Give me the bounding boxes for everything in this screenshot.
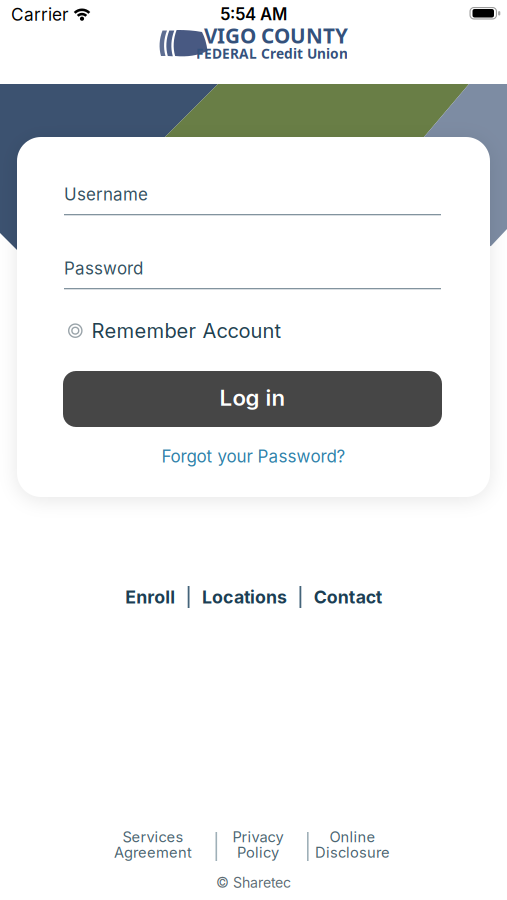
- button[interactable]: Contact: [314, 586, 382, 608]
- staticText: FEDERAL Credit Union: [196, 44, 348, 63]
- staticText: Disclosure: [315, 843, 390, 861]
- button[interactable]: Forgot your Password?: [103, 446, 403, 467]
- staticText: Contact: [314, 586, 382, 608]
- staticText: Password: [64, 258, 143, 278]
- button[interactable]: Username: [64, 184, 441, 215]
- staticText: Forgot your Password?: [161, 446, 345, 467]
- staticText: VIGO COUNTY: [204, 21, 348, 50]
- staticText: Privacy: [232, 828, 283, 846]
- staticText: Enroll: [125, 586, 175, 608]
- staticText: Agreement: [114, 843, 192, 861]
- button[interactable]: Enroll: [125, 586, 175, 608]
- button[interactable]: Online: [282, 828, 422, 864]
- button[interactable]: Services: [83, 828, 223, 864]
- staticText: Username: [64, 184, 148, 204]
- staticText: Online: [329, 828, 375, 846]
- staticText: Services: [122, 828, 183, 846]
- staticText: Log in: [219, 384, 285, 411]
- staticText: 5:54 AM: [220, 4, 287, 24]
- button[interactable]: Locations: [202, 586, 287, 608]
- staticText: Policy: [237, 843, 279, 861]
- button[interactable]: Remember Account: [68, 318, 282, 343]
- button[interactable]: © Sharetec: [0, 874, 507, 891]
- button[interactable]: Privacy: [188, 828, 328, 864]
- staticText: Locations: [202, 586, 287, 608]
- button[interactable]: Log in: [63, 371, 442, 427]
- staticText: Remember Account: [92, 318, 282, 343]
- staticText: © Sharetec: [216, 874, 291, 891]
- button[interactable]: Password: [64, 258, 441, 289]
- staticText: Carrier: [11, 4, 68, 25]
